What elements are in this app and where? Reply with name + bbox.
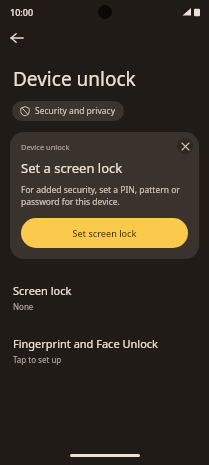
staticText: Screen lock: [13, 283, 72, 298]
button[interactable]: Security and privacy: [12, 101, 124, 121]
button[interactable]: Set screen lock: [21, 218, 188, 248]
staticText: Security and privacy: [35, 105, 116, 117]
button[interactable]: Fingerprint and Face Unlock: [0, 334, 209, 367]
staticText: Device unlock: [21, 142, 70, 152]
staticText: Set screen lock: [72, 227, 137, 239]
staticText: 10:00: [10, 6, 34, 18]
staticText: None: [13, 301, 34, 312]
button[interactable]: Back: [3, 24, 31, 52]
staticText: For added security, set a PIN, pattern o…: [21, 184, 188, 208]
staticText: Set a screen lock: [21, 159, 123, 177]
staticText: Fingerprint and Face Unlock: [13, 336, 158, 351]
button[interactable]: Screen lock: [0, 281, 209, 314]
staticText: Tap to set up: [13, 354, 62, 365]
button[interactable]: Dismiss: [177, 138, 193, 154]
staticText: Device unlock: [13, 66, 136, 92]
